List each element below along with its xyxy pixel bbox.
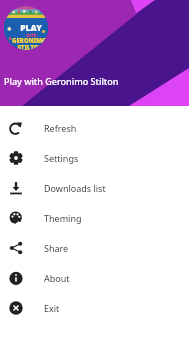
staticText: Settings	[44, 152, 79, 164]
button[interactable]: Share	[0, 233, 189, 263]
staticText: Exit	[44, 302, 60, 314]
button[interactable]: Downloads list	[0, 173, 189, 203]
staticText: Refresh	[44, 122, 77, 134]
button[interactable]: About	[0, 263, 189, 293]
staticText: STILTON	[17, 44, 44, 50]
staticText: Play with Geronimo Stilton	[4, 75, 119, 87]
staticText: GERONIMO	[12, 37, 47, 45]
button[interactable]: Exit	[0, 293, 189, 323]
staticText: with	[26, 32, 37, 38]
staticText: Share	[44, 242, 69, 254]
button[interactable]: Theming	[0, 203, 189, 233]
staticText: Theming	[44, 212, 82, 224]
button[interactable]: Refresh	[0, 113, 189, 143]
staticText: Downloads list	[44, 182, 106, 194]
button[interactable]: Settings	[0, 143, 189, 173]
staticText: About	[44, 272, 70, 284]
staticText: PLAY	[20, 22, 42, 34]
